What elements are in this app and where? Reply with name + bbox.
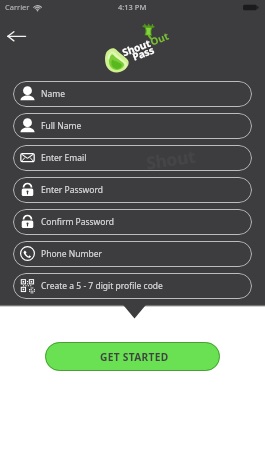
button[interactable]: Create a 5 - 7 digit profile code <box>13 273 252 299</box>
button[interactable]: Enter Email <box>13 145 252 171</box>
staticText: Enter Email <box>41 152 87 164</box>
staticText: Out <box>148 29 171 49</box>
staticText: Confirm Password <box>41 216 114 228</box>
staticText: Phone Number <box>41 248 102 260</box>
staticText: Enter Password <box>41 184 104 196</box>
button[interactable]: Name <box>13 81 252 107</box>
staticText: Pass <box>130 42 157 64</box>
button[interactable]: GET STARTED <box>45 342 220 371</box>
staticText: Create a 5 - 7 digit profile code <box>41 280 163 292</box>
staticText: Shout <box>120 35 153 59</box>
button[interactable]: Confirm Password <box>13 209 252 235</box>
staticText: Carrier <box>5 2 30 12</box>
button[interactable]: Enter Password <box>13 177 252 203</box>
staticText: Shout <box>145 145 197 174</box>
staticText: GET STARTED <box>100 350 169 364</box>
staticText: Name <box>41 88 65 100</box>
staticText: Full Name <box>41 120 82 132</box>
button[interactable]: Phone Number <box>13 241 252 267</box>
button[interactable]: Full Name <box>13 113 252 139</box>
button[interactable]: Back <box>3 26 30 47</box>
staticText: 4:13 PM <box>118 2 147 12</box>
